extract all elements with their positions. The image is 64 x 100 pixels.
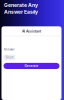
- button[interactable]: Generate: [3, 63, 59, 69]
- button[interactable]: Short: [3, 55, 15, 60]
- staticText: Generate Any: [4, 2, 38, 8]
- staticText: Generate: [24, 64, 38, 68]
- staticText: AI Assistant: [22, 29, 41, 33]
- staticText: Short: [5, 56, 13, 59]
- staticText: Answer Easily: [4, 9, 38, 15]
- staticText: Answer: [3, 48, 14, 51]
